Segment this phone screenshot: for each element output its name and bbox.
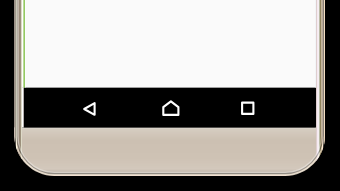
button[interactable]: Recent apps bbox=[215, 88, 299, 128]
button[interactable]: Home bbox=[131, 88, 215, 128]
button[interactable]: Back bbox=[47, 88, 131, 128]
